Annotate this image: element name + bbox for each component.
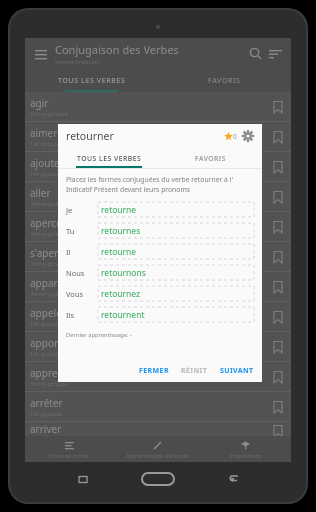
staticText: 2ème groupe	[30, 110, 68, 118]
staticText: retournons	[101, 267, 146, 279]
button[interactable]: retournez	[98, 286, 254, 301]
button[interactable]: Bookmark	[269, 398, 287, 416]
button[interactable]: ajouter	[25, 152, 291, 181]
button[interactable]: FAVORIS	[160, 148, 262, 168]
button[interactable]: s'apercevoir	[25, 242, 291, 271]
button[interactable]: retournent	[98, 307, 254, 322]
staticText: TOUS LES VERBES	[58, 76, 126, 86]
button[interactable]: retournes	[98, 223, 254, 238]
staticText: 1er groupe	[30, 410, 62, 418]
staticText: SUIVANT	[220, 366, 254, 376]
staticText: Conjugaison des Verbes	[55, 42, 179, 57]
staticText: aller	[30, 186, 51, 200]
staticText: 0	[233, 132, 237, 141]
staticText: agir	[30, 96, 49, 110]
staticText: retourner	[66, 129, 224, 143]
button[interactable]: FAVORIS	[158, 70, 291, 92]
button[interactable]: Sort	[266, 44, 286, 64]
button[interactable]: Bookmark	[269, 98, 287, 116]
button[interactable]: Bookmark	[269, 278, 287, 296]
button[interactable]: retourne	[98, 244, 254, 259]
button[interactable]: Bookmark	[269, 158, 287, 176]
staticText: Verbes Français	[55, 58, 100, 66]
staticText: retourne	[101, 204, 137, 216]
staticText: TOUS LES VERBES	[77, 154, 142, 163]
button[interactable]: Recents	[72, 468, 94, 490]
staticText: FAVORIS	[208, 76, 241, 86]
staticText: 3ème groupe	[30, 200, 68, 208]
button[interactable]: Search	[246, 44, 266, 64]
button[interactable]: Bookmark	[269, 308, 287, 326]
staticText: appeler	[30, 306, 66, 320]
button[interactable]: arriver	[25, 422, 291, 436]
button[interactable]: RÉINIT	[179, 363, 210, 379]
staticText: arrêter	[30, 396, 63, 410]
staticText: Tu	[66, 226, 75, 236]
staticText: Vous	[66, 289, 84, 299]
staticText: 1er groupe	[30, 170, 62, 178]
button[interactable]: Bookmark	[269, 128, 287, 146]
staticText: Ils	[66, 310, 75, 320]
staticText: retournez	[101, 288, 141, 300]
staticText: s'apercevoir	[30, 246, 87, 260]
button[interactable]: Settings	[242, 130, 254, 142]
staticText: 1er groupe	[30, 320, 62, 328]
staticText: FERMER	[139, 366, 169, 376]
button[interactable]: Menu	[31, 44, 51, 64]
button[interactable]: aller	[25, 182, 291, 211]
staticText: 3ème groupe	[30, 290, 68, 298]
staticText: apprendre	[30, 366, 80, 380]
staticText: RÉINIT	[181, 366, 208, 376]
staticText: apporter	[30, 336, 72, 350]
button[interactable]: arrêter	[25, 392, 291, 421]
staticText: Indicatif Présent devant leurs pronoms	[66, 185, 191, 194]
button[interactable]: TOUS LES VERBES	[58, 148, 160, 168]
button[interactable]: retourne	[98, 202, 254, 217]
staticText: Prépositions	[229, 452, 262, 459]
button[interactable]: Bookmark	[269, 218, 287, 236]
button[interactable]: aimer	[25, 122, 291, 151]
staticText: Je	[66, 205, 73, 215]
staticText: Il	[66, 247, 71, 257]
staticText: apparaître	[30, 276, 79, 290]
button[interactable]: apprendre	[25, 362, 291, 391]
button[interactable]: Back	[223, 468, 245, 490]
staticText: ajouter	[30, 156, 64, 170]
staticText: Dernier apprentissage: -	[66, 331, 132, 339]
staticText: Apprentissage d'écriture	[126, 452, 189, 459]
button[interactable]: FERMER	[137, 363, 171, 379]
button[interactable]: Choix de forme	[25, 436, 113, 462]
button[interactable]: apparaître	[25, 272, 291, 301]
button[interactable]: appeler	[25, 302, 291, 331]
button[interactable]: agir	[25, 92, 291, 121]
staticText: apercevoir	[30, 216, 80, 230]
button[interactable]: apporter	[25, 332, 291, 361]
button[interactable]: Bookmark	[269, 368, 287, 386]
button[interactable]: Bookmark	[269, 338, 287, 356]
staticText: retournent	[101, 309, 145, 321]
button[interactable]: Bookmark	[269, 248, 287, 266]
button[interactable]: Home	[140, 471, 176, 487]
button[interactable]: Apprentissage d'écriture	[113, 436, 201, 462]
staticText: 1er groupe	[30, 350, 62, 358]
staticText: Placez les formes conjuguées du verbe re…	[66, 175, 233, 184]
staticText: Choix de forme	[49, 452, 89, 459]
staticText: 3ème groupe	[30, 230, 68, 238]
button[interactable]: Bookmark	[269, 422, 287, 436]
button[interactable]: apercevoir	[25, 212, 291, 241]
button[interactable]: retournons	[98, 265, 254, 280]
staticText: retournes	[101, 225, 141, 237]
staticText: Nous	[66, 268, 85, 278]
staticText: 3ème groupe	[30, 380, 68, 388]
staticText: arriver	[30, 422, 62, 436]
button[interactable]: Favorite	[224, 132, 237, 141]
staticText: FAVORIS	[195, 154, 227, 163]
button[interactable]: Prépositions	[201, 436, 289, 462]
staticText: 3ème groupe	[30, 260, 68, 268]
button[interactable]: Bookmark	[269, 188, 287, 206]
staticText: retourne	[101, 246, 137, 258]
button[interactable]: TOUS LES VERBES	[25, 70, 158, 92]
button[interactable]: SUIVANT	[218, 363, 256, 379]
staticText: aimer	[30, 126, 58, 140]
staticText: 1er groupe	[30, 140, 62, 148]
